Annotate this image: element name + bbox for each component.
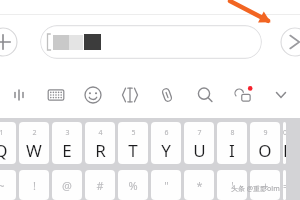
staticText: @ (62, 178, 72, 193)
button[interactable] (40, 25, 262, 59)
staticText: 7 (197, 128, 202, 138)
staticText: " (164, 178, 169, 193)
staticText: Y (161, 139, 171, 162)
staticText: 1 (0, 128, 4, 138)
staticText: 5 (131, 128, 136, 138)
button[interactable]: Search (186, 80, 224, 110)
button[interactable]: = (283, 170, 286, 200)
staticText: 6 (164, 128, 169, 138)
staticText: ~ (0, 178, 5, 193)
button[interactable]: 5 (118, 122, 148, 164)
button[interactable]: # (85, 170, 115, 200)
button[interactable]: More (262, 80, 300, 110)
staticText: + (262, 178, 269, 193)
staticText: 4 (98, 128, 103, 138)
staticText: 9 (263, 128, 268, 138)
staticText: T (128, 139, 138, 162)
staticText: P (283, 139, 286, 162)
button[interactable]: Emoji (74, 80, 111, 110)
staticText: I (229, 139, 235, 162)
staticText: 2 (32, 128, 37, 138)
button[interactable]: Store (224, 80, 262, 110)
button[interactable]: % (118, 170, 148, 200)
button[interactable]: ' (217, 170, 247, 200)
staticText: ' (231, 178, 234, 193)
button[interactable]: 0 (283, 122, 286, 164)
staticText: Q (0, 139, 8, 162)
staticText: ! (33, 178, 36, 193)
staticText: % (128, 178, 138, 193)
staticText: # (96, 178, 104, 193)
button[interactable]: 9 (250, 122, 280, 164)
button[interactable]: * (184, 170, 214, 200)
button[interactable]: ! (19, 170, 49, 200)
staticText: U (193, 139, 206, 162)
button[interactable]: 7 (184, 122, 214, 164)
button[interactable]: Format (111, 80, 148, 110)
staticText: W (26, 139, 42, 162)
staticText: = (283, 178, 286, 193)
button[interactable]: 1 (0, 122, 16, 164)
button[interactable]: " (151, 170, 181, 200)
staticText: 3 (65, 128, 70, 138)
staticText: 0 (283, 128, 286, 138)
button[interactable]: 2 (19, 122, 49, 164)
staticText: 8 (230, 128, 235, 138)
staticText: * (196, 178, 203, 193)
staticText: O (258, 139, 272, 162)
button[interactable]: Keyboard (37, 80, 74, 110)
button[interactable]: Attach (148, 80, 186, 110)
button[interactable]: 3 (52, 122, 82, 164)
button[interactable]: + (250, 170, 280, 200)
staticText: E (62, 139, 72, 162)
button[interactable]: 6 (151, 122, 181, 164)
staticText: 头条 @重影olm (231, 184, 280, 194)
button[interactable]: 8 (217, 122, 247, 164)
button[interactable]: 4 (85, 122, 115, 164)
staticText: R (95, 139, 106, 162)
button[interactable]: @ (52, 170, 82, 200)
button[interactable]: Next (280, 27, 300, 57)
button[interactable]: Add (0, 27, 18, 57)
button[interactable]: ~ (0, 170, 16, 200)
button[interactable]: Voice (0, 80, 37, 110)
